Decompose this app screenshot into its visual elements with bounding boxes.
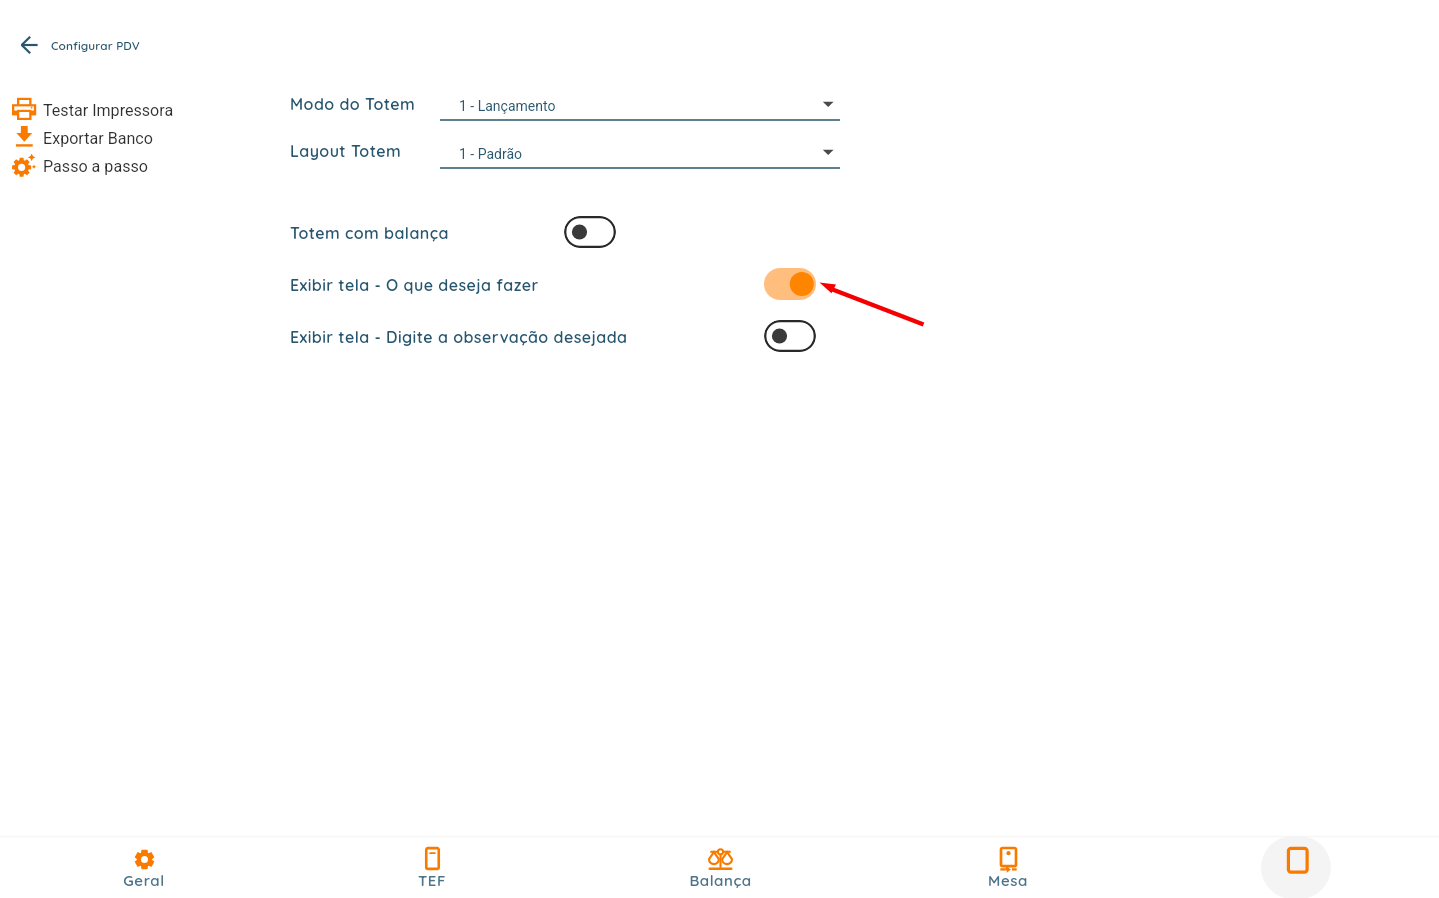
staticText: Totem com balança: [290, 223, 449, 243]
button[interactable]: 1 - Padrão: [440, 141, 840, 169]
staticText: Layout Totem: [290, 141, 402, 161]
button[interactable]: Voltar: [16, 31, 44, 59]
button[interactable]: Mesa: [948, 835, 1068, 898]
staticText: 1 - Lançamento: [459, 98, 556, 114]
staticText: Modo do Totem: [290, 94, 416, 114]
button[interactable]: Passo a passo: [9, 152, 148, 180]
staticText: 1 - Padrão: [459, 146, 523, 162]
staticText: Exportar Banco: [43, 129, 153, 148]
button[interactable]: Testar Impressora: [9, 96, 174, 124]
staticText: Exibir tela - Digite a observação deseja…: [290, 327, 628, 347]
button[interactable]: Exibir tela - O que deseja fazer: [764, 268, 816, 300]
staticText: Passo a passo: [43, 157, 148, 176]
button[interactable]: Balança: [660, 835, 780, 898]
staticText: Configurar PDV: [51, 38, 140, 53]
staticText: Mesa: [988, 871, 1028, 890]
button[interactable]: Terminal: [1261, 836, 1331, 898]
staticText: Geral: [123, 871, 165, 890]
staticText: TEF: [418, 871, 446, 890]
button[interactable]: Voltar: [16, 31, 140, 59]
staticText: Testar Impressora: [43, 101, 174, 120]
button[interactable]: Exportar Banco: [9, 124, 153, 152]
button[interactable]: Geral: [84, 835, 204, 898]
button[interactable]: Totem com balança: [564, 216, 616, 248]
button[interactable]: 1 - Lançamento: [440, 93, 840, 121]
staticText: Balança: [689, 871, 752, 890]
button[interactable]: Exibir tela - Digite a observação deseja…: [764, 320, 816, 352]
staticText: Exibir tela - O que deseja fazer: [290, 275, 539, 295]
button[interactable]: TEF: [372, 835, 492, 898]
